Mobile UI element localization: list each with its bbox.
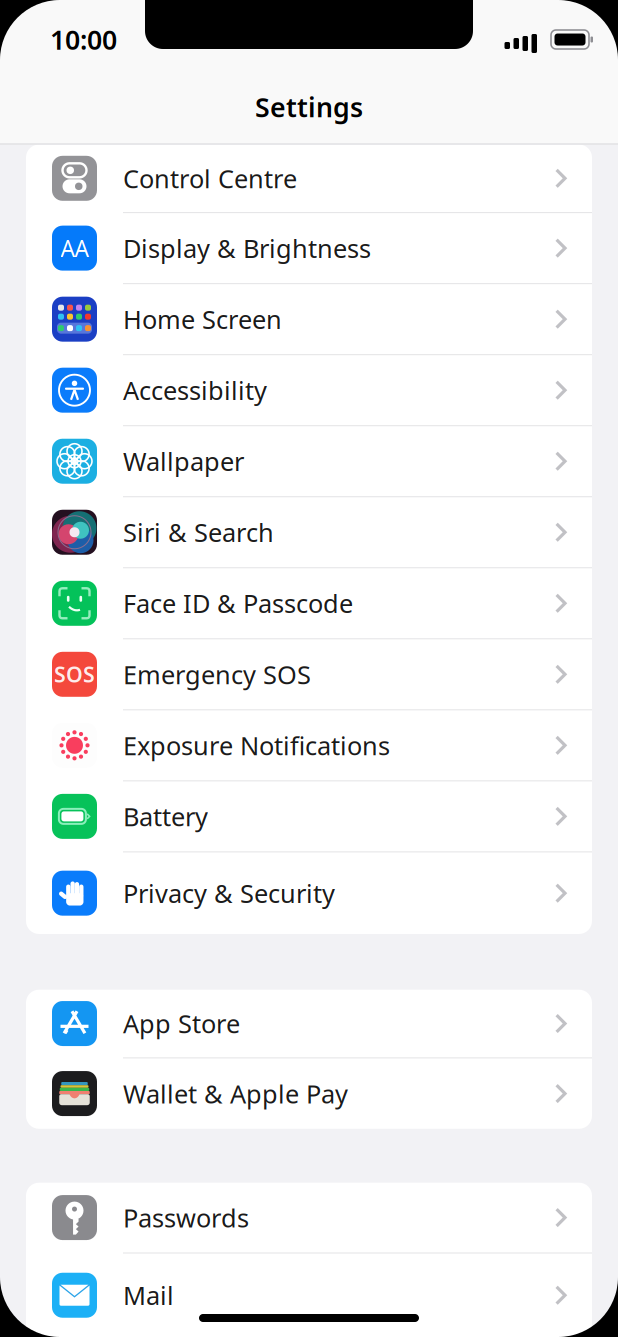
button[interactable]: Accessibility: [26, 355, 592, 426]
button[interactable]: Wallpaper: [26, 426, 592, 497]
button[interactable]: Mail: [26, 1253, 592, 1337]
staticText: SOS: [54, 660, 95, 688]
staticText: AA: [60, 233, 88, 263]
button[interactable]: Privacy & Security: [26, 852, 592, 934]
button[interactable]: Battery: [26, 781, 592, 852]
button[interactable]: Passwords: [26, 1183, 592, 1253]
button[interactable]: SOS: [26, 639, 592, 710]
staticText: Settings: [255, 89, 363, 124]
staticText: Display & Brightness: [123, 231, 371, 265]
staticText: Battery: [123, 799, 208, 833]
staticText: Wallpaper: [123, 444, 244, 478]
staticText: Exposure Notifications: [123, 728, 390, 762]
button[interactable]: Siri & Search: [26, 497, 592, 568]
button[interactable]: Face ID & Passcode: [26, 568, 592, 639]
staticText: App Store: [123, 1007, 240, 1040]
staticText: 10:00: [50, 22, 117, 57]
staticText: Emergency SOS: [123, 657, 311, 691]
button[interactable]: Home Screen: [26, 284, 592, 355]
staticText: Home Screen: [123, 302, 282, 336]
staticText: Siri & Search: [123, 515, 274, 549]
button[interactable]: Wallet & Apple Pay: [26, 1058, 592, 1129]
button[interactable]: Control Centre: [26, 144, 592, 213]
staticText: Accessibility: [123, 373, 267, 407]
staticText: Passwords: [123, 1201, 249, 1234]
button[interactable]: AA: [26, 213, 592, 284]
staticText: Control Centre: [123, 161, 297, 195]
staticText: Privacy & Security: [123, 876, 335, 910]
staticText: Mail: [123, 1278, 174, 1312]
button[interactable]: Exposure Notifications: [26, 710, 592, 781]
button[interactable]: App Store: [26, 990, 592, 1058]
staticText: Face ID & Passcode: [123, 586, 353, 620]
staticText: Wallet & Apple Pay: [123, 1077, 348, 1110]
